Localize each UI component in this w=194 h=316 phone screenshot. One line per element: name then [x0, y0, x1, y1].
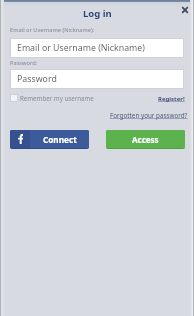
button[interactable]: Connect [10, 130, 89, 148]
button[interactable]: Remember my username [10, 94, 94, 102]
button[interactable]: Register! [158, 95, 185, 103]
staticText: Remember my username [20, 94, 94, 102]
staticText: Log in [83, 7, 112, 20]
staticText: Password [17, 73, 57, 85]
staticText: Access [132, 134, 159, 145]
button[interactable]: Close [177, 2, 193, 18]
button[interactable]: Password [10, 69, 184, 89]
button[interactable]: Forgotten your password? [110, 111, 188, 120]
button[interactable]: Access [106, 130, 185, 148]
staticText: Password: [10, 59, 38, 67]
staticText: Connect [43, 134, 77, 145]
button[interactable]: Email or Username (Nickname) [10, 38, 184, 58]
staticText: Email or Username (Nickname) [17, 42, 145, 54]
staticText: Email or Username (Nickname): [10, 26, 95, 34]
